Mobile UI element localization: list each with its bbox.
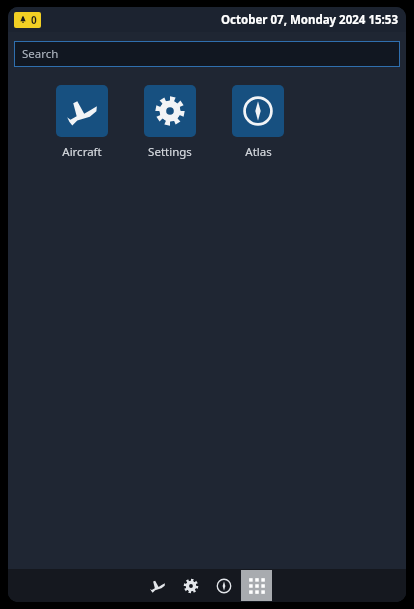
staticText: October 07, Monday 2024 15:53 bbox=[221, 12, 398, 28]
button[interactable]: Search bbox=[14, 41, 400, 67]
button[interactable]: Aircraft bbox=[142, 570, 173, 601]
staticText: Settings bbox=[148, 144, 192, 160]
staticText: Search bbox=[22, 46, 59, 62]
button[interactable]: Settings bbox=[175, 570, 206, 601]
button[interactable]: Settings bbox=[132, 85, 208, 160]
staticText: 0 bbox=[31, 13, 37, 27]
staticText: Aircraft bbox=[62, 144, 102, 160]
button[interactable]: Atlas bbox=[220, 85, 296, 160]
staticText: Atlas bbox=[245, 144, 272, 160]
button[interactable]: Aircraft bbox=[44, 85, 120, 160]
button[interactable]: Notifications bbox=[14, 12, 41, 28]
button[interactable]: Atlas bbox=[208, 570, 239, 601]
button[interactable]: Apps bbox=[241, 570, 272, 601]
